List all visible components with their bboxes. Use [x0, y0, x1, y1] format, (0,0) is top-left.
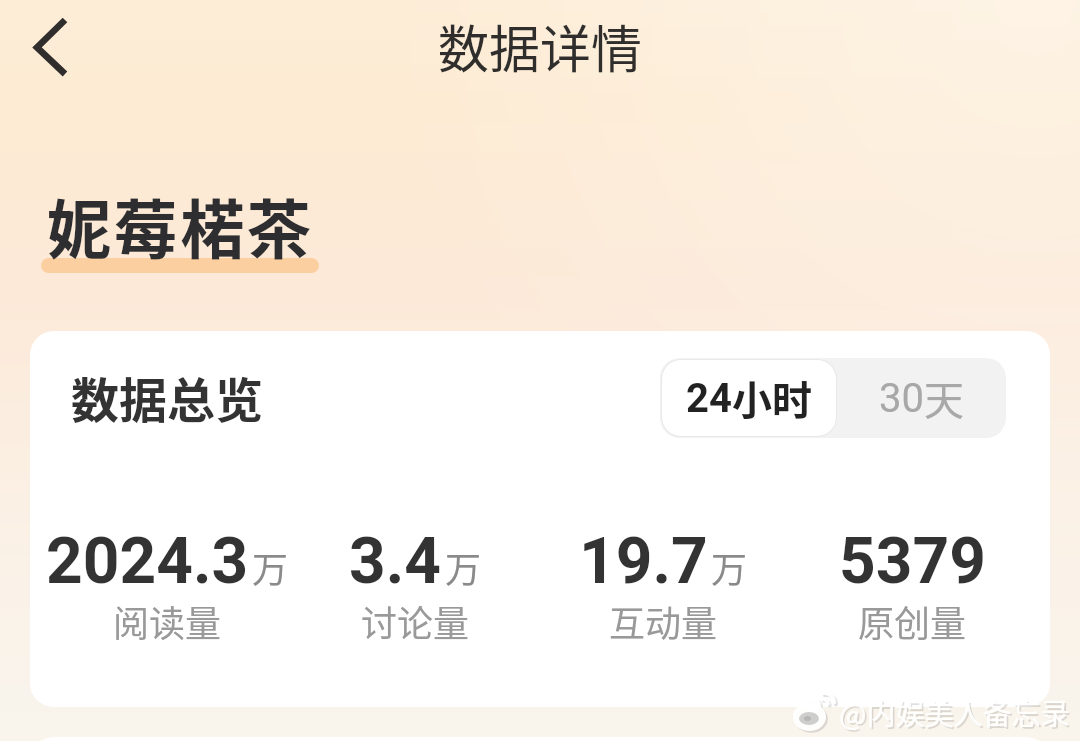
staticText: 数据总览 — [71, 362, 264, 432]
staticText: 原创量 — [858, 595, 967, 647]
staticText: 数据详情 — [0, 9, 1080, 83]
staticText: 互动量 — [609, 595, 718, 647]
button[interactable]: 30 — [836, 360, 1006, 436]
staticText: 3.4 — [349, 524, 442, 599]
staticText: 万 — [445, 541, 482, 593]
staticText: 5379 — [839, 524, 986, 599]
button[interactable]: 24 — [662, 360, 836, 436]
staticText: 19.7 — [579, 524, 708, 599]
staticText: 天 — [924, 369, 964, 427]
button[interactable]: Back — [2, 6, 90, 94]
staticText: 阅读量 — [113, 595, 222, 647]
staticText: 万 — [711, 541, 748, 593]
staticText: 妮莓楉茶 — [47, 179, 314, 272]
staticText: 小时 — [732, 369, 812, 427]
staticText: 24 — [686, 375, 732, 422]
staticText: @内娱美人备忘录 — [839, 691, 1070, 733]
staticText: @内娱美人备忘录 — [841, 693, 1072, 735]
staticText: 讨论量 — [361, 595, 470, 647]
staticText: 30 — [879, 375, 924, 422]
staticText: 2024.3 — [46, 524, 249, 599]
staticText: 万 — [252, 541, 289, 593]
